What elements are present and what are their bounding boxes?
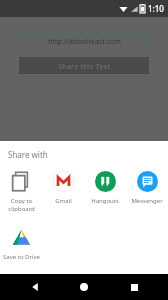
other: Save to Drive (11, 227, 32, 248)
staticText: 1:10 (148, 3, 164, 14)
staticText: Copy to clipboard (8, 197, 35, 213)
staticText: http://aboutreact.com (48, 37, 121, 47)
button[interactable]: Home (69, 274, 99, 300)
other: Copy to clipboard (11, 171, 32, 192)
staticText: Save to Drive (3, 253, 40, 261)
button[interactable]: Recent apps (119, 274, 149, 300)
staticText: Share this Text (58, 61, 111, 71)
button[interactable]: Back (20, 274, 50, 300)
staticText: Hangouts (91, 197, 119, 205)
button[interactable]: Save to Drive (0, 222, 42, 264)
button[interactable]: Copy to clipboard (0, 166, 42, 216)
other: Messenger (137, 171, 158, 192)
button[interactable]: Gmail (42, 166, 84, 208)
other: Hangouts (95, 171, 116, 192)
staticText: Share with (8, 149, 48, 160)
button[interactable]: Messenger (126, 166, 168, 208)
staticText: Gmail (55, 197, 72, 205)
other: Gmail (53, 171, 74, 192)
staticText: Messenger (131, 197, 163, 205)
button[interactable]: Hangouts (84, 166, 126, 208)
